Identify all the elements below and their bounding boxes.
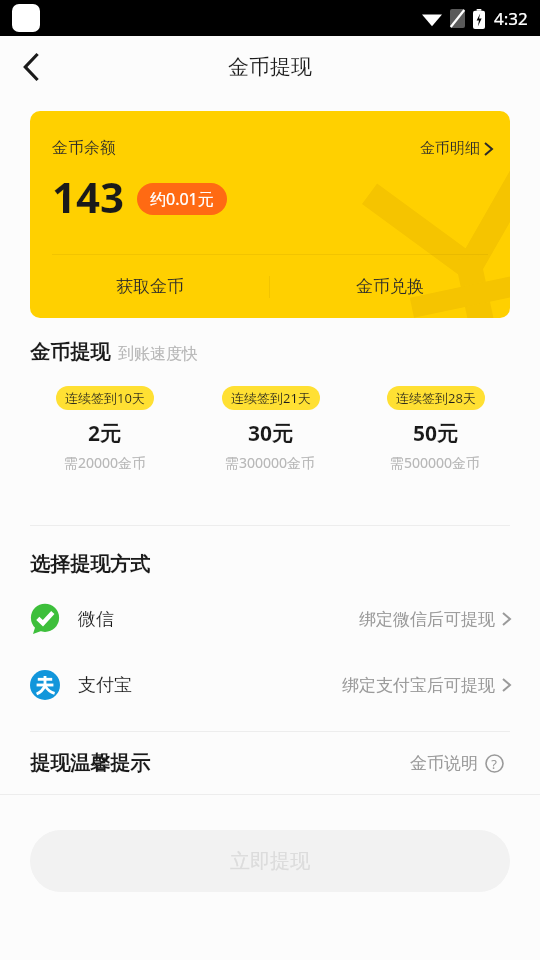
button[interactable]: 连续签到21天	[188, 386, 353, 472]
button[interactable]: 连续签到28天	[353, 386, 518, 472]
button[interactable]: 金币明细	[420, 139, 492, 158]
button[interactable]: 金币说明	[410, 753, 510, 774]
button[interactable]: 微信	[0, 600, 540, 638]
staticText: 获取金币	[116, 276, 184, 297]
staticText: 连续签到10天	[65, 389, 145, 407]
staticText: 金币提现	[30, 340, 110, 365]
staticText: 金币明细	[420, 139, 480, 158]
button[interactable]: Back	[8, 43, 56, 91]
staticText: 4:32	[494, 7, 528, 30]
staticText: 金币提现	[228, 54, 312, 80]
staticText: 2元	[88, 419, 122, 448]
button[interactable]: 立即提现	[30, 830, 510, 892]
staticText: 金币说明	[410, 753, 478, 774]
staticText: 立即提现	[230, 849, 310, 874]
staticText: 支付宝	[78, 674, 132, 697]
button[interactable]: 金币兑换	[270, 255, 510, 318]
staticText: 金币余额	[52, 138, 116, 158]
staticText: 绑定支付宝后可提现	[342, 675, 495, 696]
staticText: 微信	[78, 608, 114, 631]
staticText: 需20000金币	[64, 453, 147, 472]
staticText: 50元	[413, 419, 459, 448]
staticText: 143	[52, 168, 125, 225]
staticText: 需500000金币	[390, 453, 481, 472]
staticText: 金币兑换	[356, 276, 424, 297]
staticText: 连续签到28天	[396, 389, 476, 407]
staticText: 约0.01元	[150, 188, 214, 210]
staticText: 需300000金币	[225, 453, 316, 472]
staticText: 连续签到21天	[231, 389, 311, 407]
button[interactable]: 连续签到10天	[22, 386, 188, 472]
staticText: 绑定微信后可提现	[359, 609, 495, 630]
button[interactable]: 支付宝	[0, 666, 540, 704]
staticText: 提现温馨提示	[30, 751, 150, 776]
staticText: 30元	[248, 419, 294, 448]
staticText: 到账速度快	[118, 344, 198, 364]
staticText: ?	[491, 755, 497, 773]
staticText: 选择提现方式	[30, 552, 150, 577]
button[interactable]: 获取金币	[30, 255, 269, 318]
